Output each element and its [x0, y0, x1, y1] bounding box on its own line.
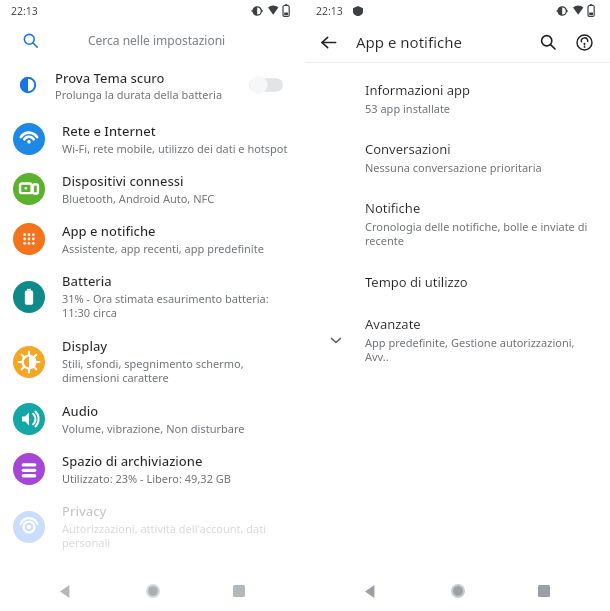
staticText: Audio [62, 402, 99, 420]
staticText: Assistente, app recenti, app predefinite [62, 241, 264, 256]
staticText: Wi-Fi, rete mobile, utilizzo dei dati e … [62, 141, 288, 156]
staticText: Autorizzazioni, attività dell'account, d… [62, 521, 293, 551]
staticText: App predefinite, Gestione autorizzazioni… [365, 335, 594, 365]
button[interactable]: Home [133, 571, 173, 611]
staticText: 22:13 [11, 4, 38, 18]
button[interactable]: Conversazioni [305, 131, 610, 184]
button[interactable]: Avanzate [305, 306, 610, 374]
button[interactable]: Cerca nelle impostazioni [8, 22, 297, 58]
staticText: Cerca nelle impostazioni [88, 32, 226, 48]
button[interactable]: Home [438, 571, 478, 611]
staticText: Informazioni app [365, 81, 470, 99]
button[interactable]: Back [351, 571, 391, 611]
staticText: 53 app installate [365, 101, 451, 116]
staticText: Prova Tema scuro [55, 69, 165, 87]
staticText: Cronologia delle notifiche, bolle e invi… [365, 219, 594, 249]
button[interactable]: Recent apps [219, 571, 259, 611]
button[interactable]: Cerca [530, 24, 566, 60]
staticText: Notifiche [365, 199, 421, 217]
button[interactable]: Privacy [0, 494, 305, 559]
staticText: Dispositivi connessi [62, 172, 184, 190]
staticText: App e notifiche [356, 32, 530, 52]
staticText: Batteria [62, 272, 112, 290]
staticText: Utilizzato: 23% - Libero: 49,32 GB [62, 471, 231, 486]
staticText: Spazio di archiviazione [62, 452, 203, 470]
button[interactable]: Dispositivi connessi [0, 164, 305, 214]
staticText: Nessuna conversazione prioritaria [365, 160, 542, 175]
staticText: Display [62, 337, 108, 355]
staticText: Prolunga la durata della batteria [55, 87, 223, 102]
button[interactable]: Tempo di utilizzo [305, 264, 610, 300]
button[interactable]: Audio [0, 394, 305, 444]
staticText: Rete e Internet [62, 122, 156, 140]
staticText: Stili, sfondi, spegnimento schermo, dime… [62, 356, 293, 386]
button[interactable]: App e notifiche [0, 214, 305, 264]
staticText: 22:13 [316, 4, 343, 18]
button[interactable]: Spazio di archiviazione [0, 444, 305, 494]
button[interactable]: Prova Tema scuro [8, 63, 297, 107]
button[interactable]: Batteria [0, 264, 305, 329]
button[interactable]: Guida [566, 24, 602, 60]
button[interactable]: Back [46, 571, 86, 611]
button[interactable]: Rete e Internet [0, 114, 305, 164]
button[interactable]: Tema scuro [249, 75, 283, 95]
button[interactable]: Back [311, 25, 345, 59]
staticText: Avanzate [365, 315, 421, 333]
staticText: Conversazioni [365, 140, 451, 158]
staticText: Volume, vibrazione, Non disturbare [62, 421, 245, 436]
button[interactable]: Notifiche [305, 190, 610, 258]
staticText: Bluetooth, Android Auto, NFC [62, 191, 215, 206]
staticText: 31% - Ora stimata esaurimento batteria: … [62, 291, 293, 321]
staticText: Tempo di utilizzo [365, 273, 468, 291]
button[interactable]: Display [0, 329, 305, 394]
button[interactable]: Recent apps [524, 571, 564, 611]
staticText: Privacy [62, 502, 107, 520]
button[interactable]: Informazioni app [305, 72, 610, 125]
staticText: App e notifiche [62, 222, 156, 240]
